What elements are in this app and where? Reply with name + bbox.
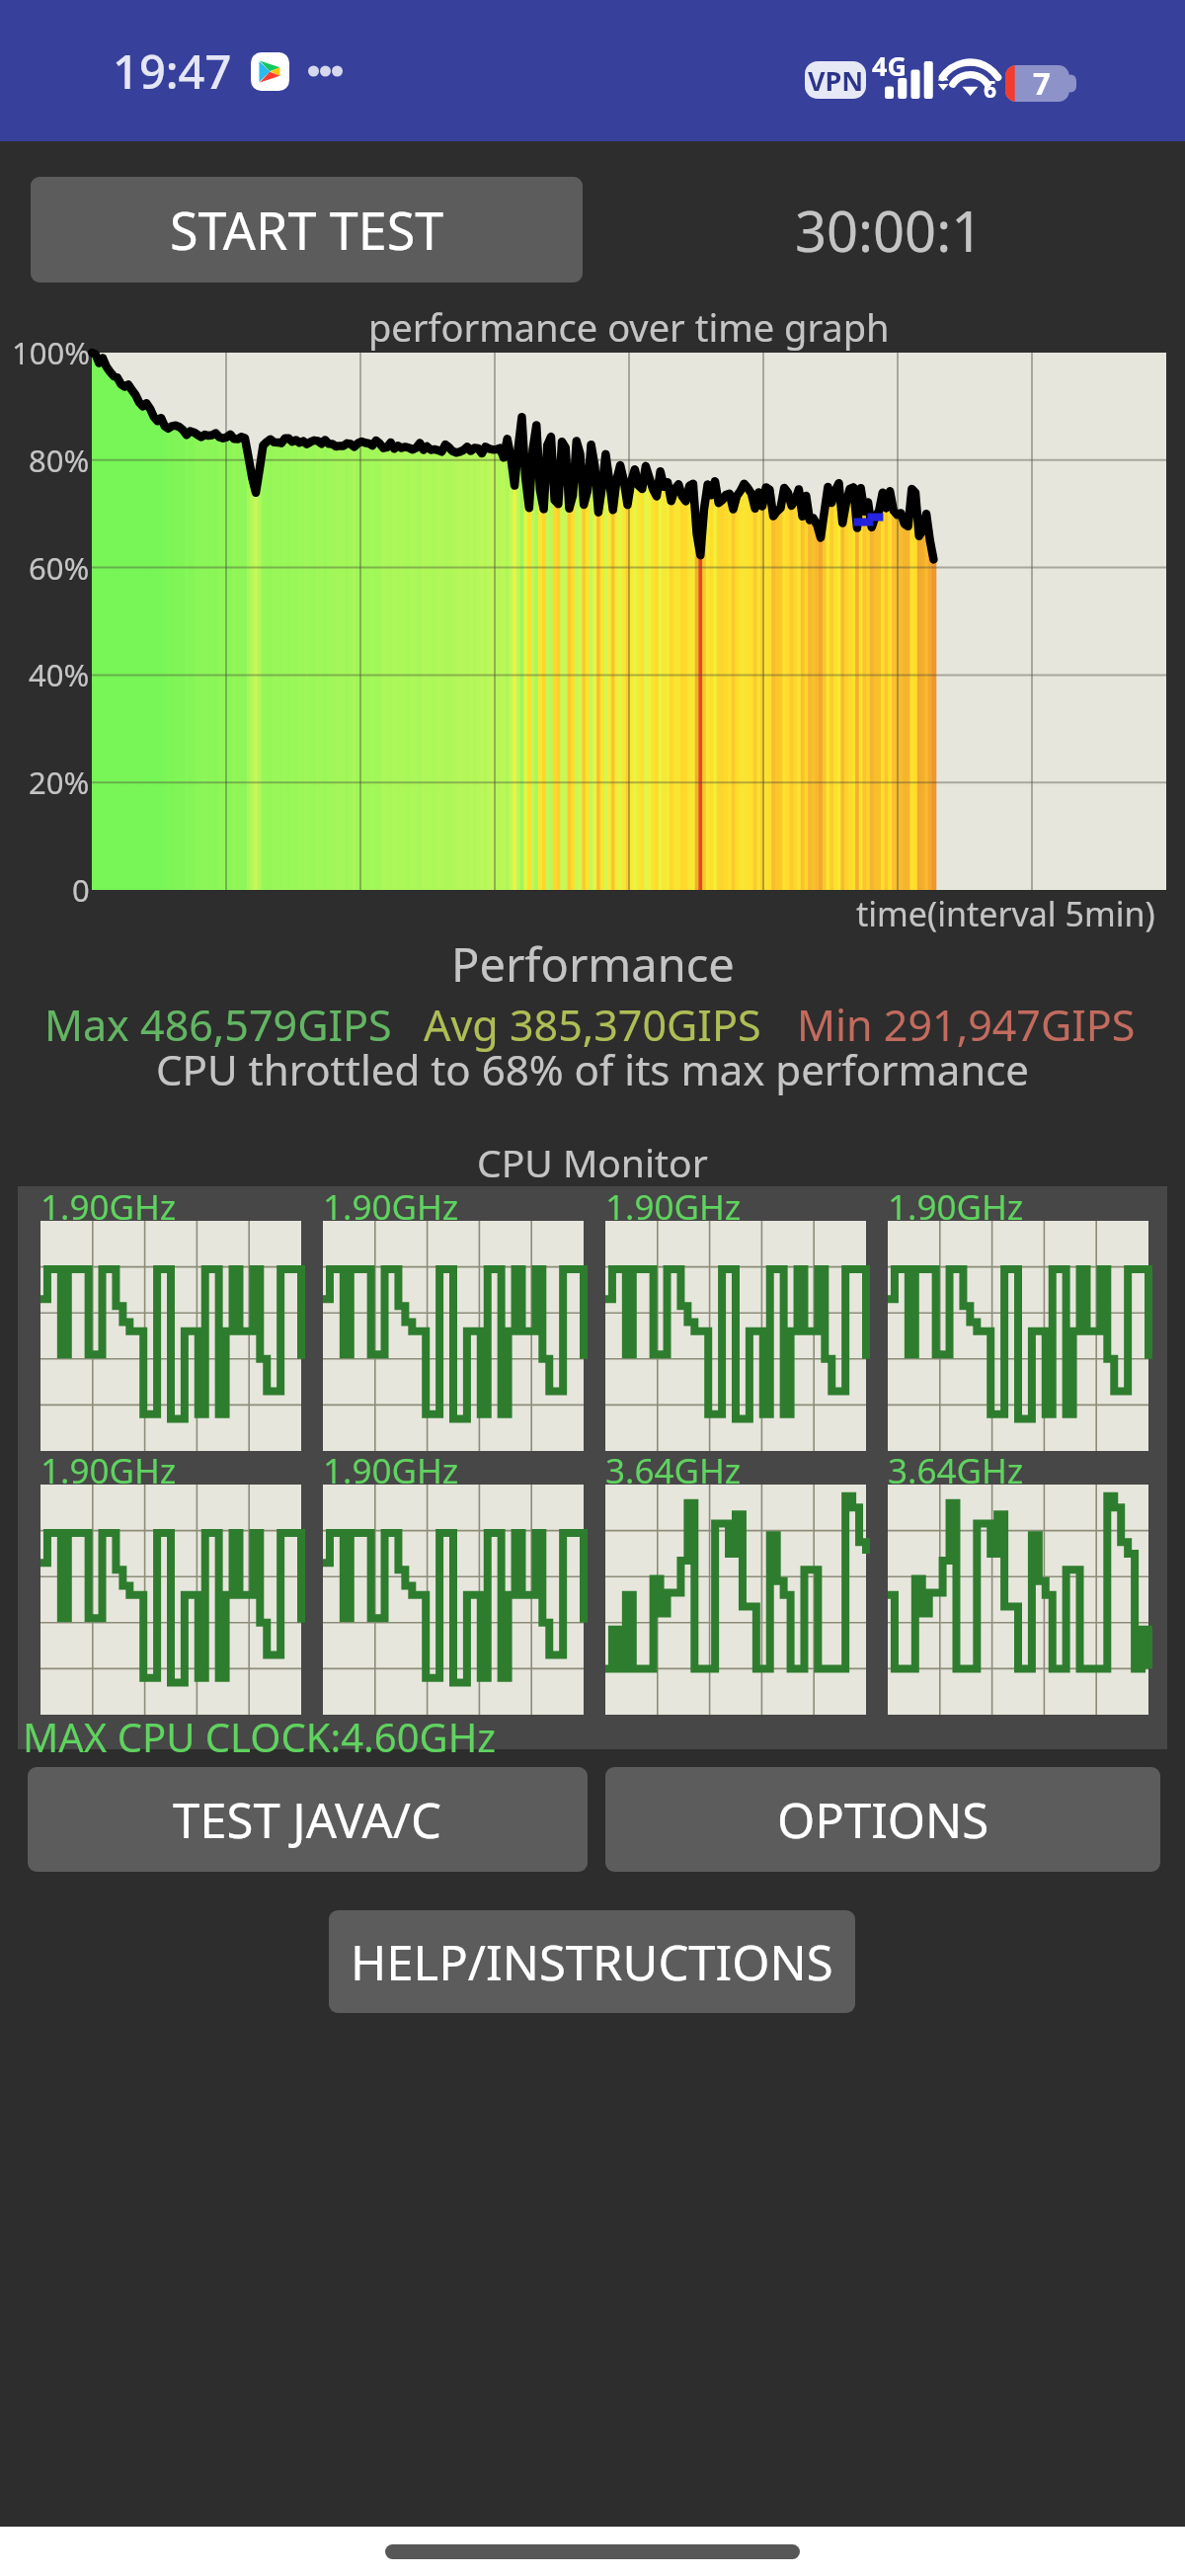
staticText: 1.90GHz bbox=[888, 1183, 1024, 1231]
staticText: Min 291,947GIPS bbox=[797, 996, 1136, 1054]
staticText: CPU throttled to 68% of its max performa… bbox=[156, 1041, 1030, 1097]
staticText: 19:47 bbox=[113, 40, 232, 103]
staticText: 20% bbox=[29, 762, 90, 803]
staticText: Performance bbox=[451, 932, 735, 996]
staticText: 3.64GHz bbox=[888, 1447, 1024, 1494]
staticText: HELP/INSTRUCTIONS bbox=[351, 1929, 833, 1995]
staticText: 1.90GHz bbox=[40, 1447, 177, 1494]
staticText: 1.90GHz bbox=[40, 1183, 177, 1231]
staticText: 40% bbox=[29, 654, 90, 695]
staticText: time(interval 5min) bbox=[856, 891, 1155, 936]
staticText: 6 bbox=[984, 73, 997, 104]
staticText: VPN bbox=[808, 62, 864, 99]
staticText: 1.90GHz bbox=[323, 1447, 459, 1494]
staticText: 7 bbox=[1033, 62, 1051, 104]
staticText: performance over time graph bbox=[368, 301, 890, 353]
staticText: MAX CPU CLOCK:4.60GHz bbox=[23, 1710, 497, 1763]
staticText: Max 486,579GIPS bbox=[44, 996, 392, 1054]
staticText: TEST JAVA/C bbox=[173, 1787, 442, 1853]
staticText: 100% bbox=[12, 332, 90, 373]
staticText: START TEST bbox=[170, 195, 444, 265]
staticText: 0 bbox=[72, 869, 90, 911]
staticText: Avg 385,370GIPS bbox=[424, 996, 761, 1054]
staticText: 1.90GHz bbox=[605, 1183, 742, 1231]
staticText: 3.64GHz bbox=[605, 1447, 742, 1494]
staticText: 1.90GHz bbox=[323, 1183, 459, 1231]
button[interactable]: Home bbox=[385, 2544, 800, 2559]
staticText: 60% bbox=[29, 547, 90, 589]
staticText: CPU Monitor bbox=[477, 1136, 708, 1188]
button[interactable]: TEST JAVA/C bbox=[28, 1767, 588, 1872]
button[interactable]: OPTIONS bbox=[605, 1767, 1160, 1872]
staticText: 4G bbox=[872, 47, 907, 84]
button[interactable]: HELP/INSTRUCTIONS bbox=[329, 1910, 855, 2013]
staticText: 30:00:1 bbox=[795, 193, 984, 268]
staticText: OPTIONS bbox=[777, 1787, 989, 1853]
staticText: 80% bbox=[29, 440, 90, 481]
button[interactable]: START TEST bbox=[31, 177, 583, 282]
